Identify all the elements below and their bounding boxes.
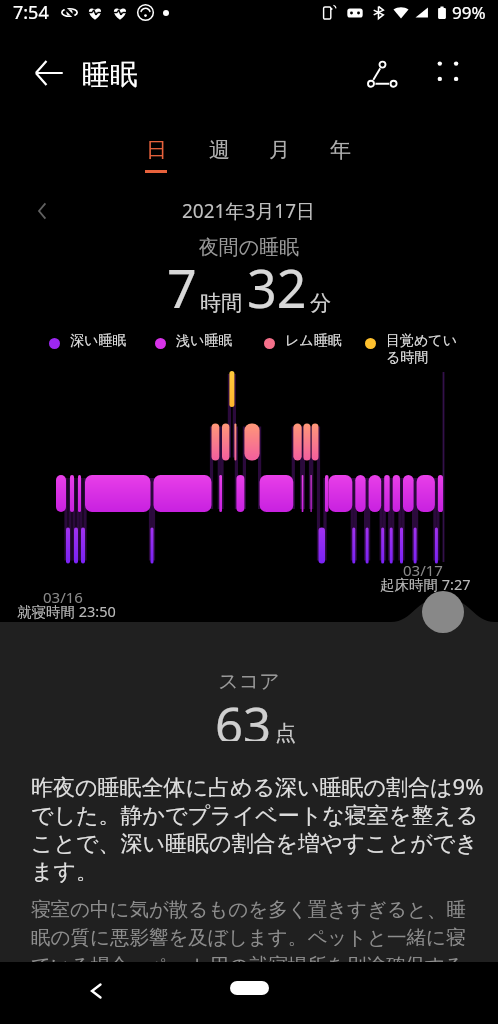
- staticText: 分: [310, 290, 331, 316]
- staticText: 03/16: [43, 587, 83, 607]
- staticText: 就寝時間 23:50: [17, 601, 116, 621]
- staticText: 99%: [452, 1, 486, 24]
- button[interactable]: Back: [74, 969, 118, 1013]
- staticText: 週: [209, 137, 230, 163]
- staticText: 32: [247, 252, 307, 323]
- button[interactable]: Back: [26, 50, 72, 96]
- staticText: 浅い睡眠: [176, 332, 233, 350]
- staticText: 寝室の中に気が散るものを多く置きすぎると、睡眠の質に悪影響を及ぼします。ペットと…: [31, 897, 469, 978]
- button[interactable]: 週: [188, 108, 250, 186]
- staticText: 7:54: [13, 0, 49, 25]
- button[interactable]: 年: [309, 108, 371, 186]
- staticText: 日: [146, 137, 167, 163]
- button[interactable]: Home: [219, 975, 279, 1001]
- staticText: 昨夜の睡眠全体に占める深い睡眠の割合は9%でした。静かでプライベートな寝室を整え…: [31, 771, 487, 885]
- staticText: 月: [269, 137, 290, 163]
- button[interactable]: Previous day: [28, 196, 58, 226]
- staticText: 7: [167, 252, 197, 323]
- staticText: スコア: [0, 669, 498, 694]
- staticText: 時間: [200, 290, 242, 316]
- button[interactable]: More options: [425, 49, 471, 95]
- button[interactable]: 日: [125, 108, 187, 186]
- staticText: 年: [330, 137, 351, 163]
- staticText: 夜間の睡眠: [0, 235, 498, 260]
- staticText: 点: [275, 720, 296, 746]
- staticText: 63: [215, 691, 272, 741]
- button[interactable]: 月: [248, 108, 310, 186]
- button[interactable]: Share: [358, 48, 406, 96]
- staticText: 03/17: [403, 560, 443, 580]
- staticText: 睡眠: [82, 57, 138, 92]
- staticText: 2021年3月17日: [182, 198, 316, 224]
- staticText: 深い睡眠: [70, 332, 127, 350]
- staticText: 起床時間 7:27: [380, 574, 471, 594]
- staticText: レム睡眠: [285, 332, 342, 350]
- staticText: 目覚めている時間: [386, 332, 460, 366]
